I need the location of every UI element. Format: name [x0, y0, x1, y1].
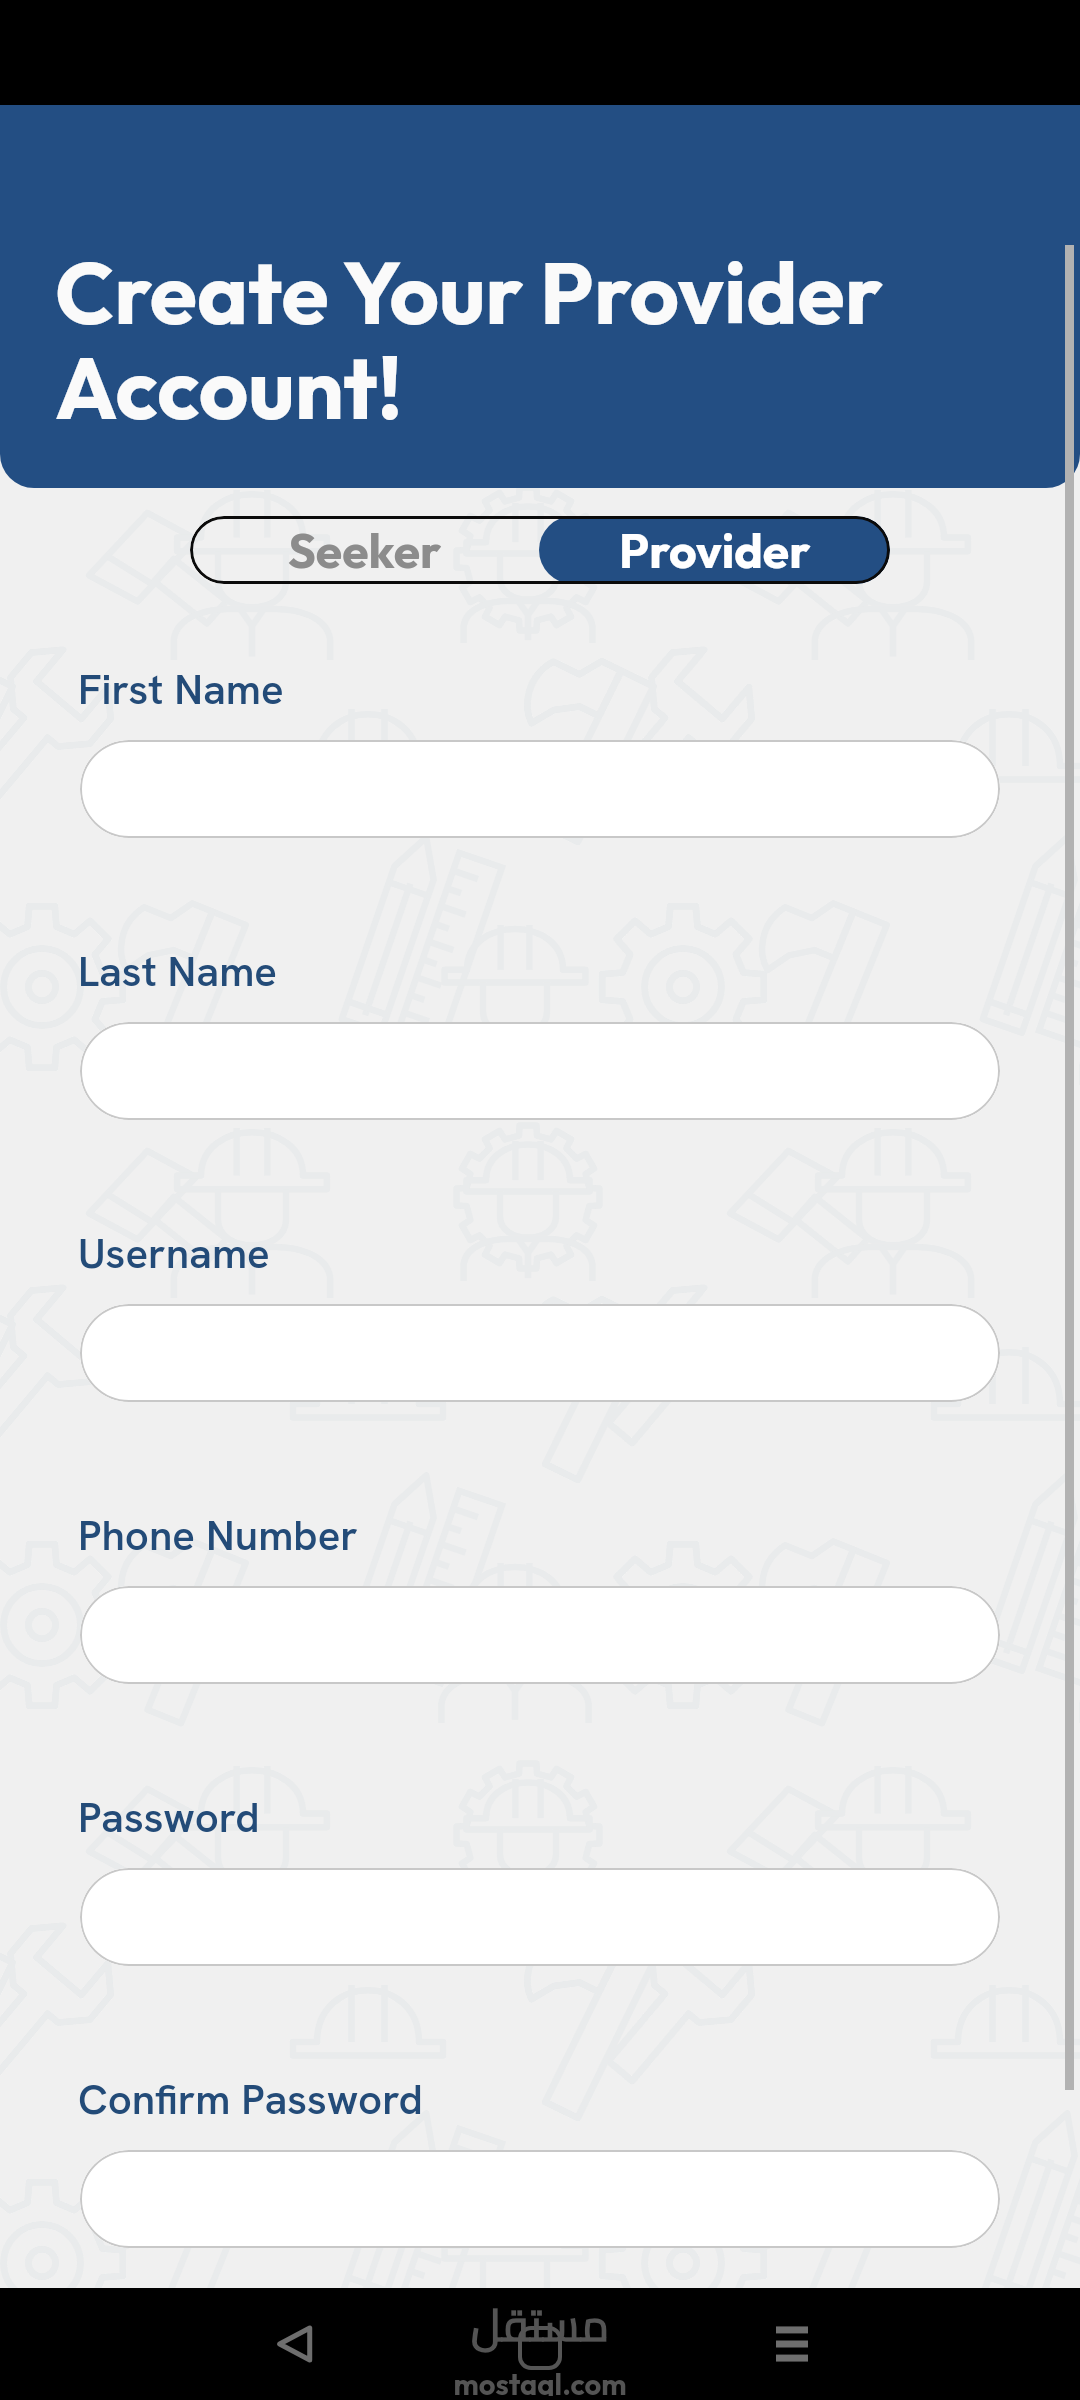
staticText: Provider	[619, 520, 811, 580]
button[interactable]: Back	[235, 2288, 355, 2400]
staticText: Last Name	[78, 944, 278, 999]
button[interactable]	[80, 1868, 1000, 1966]
button[interactable]: Seeker	[190, 516, 539, 584]
button[interactable]	[80, 740, 1000, 838]
button[interactable]: Home	[420, 2288, 660, 2400]
staticText: mostaql.com	[453, 2366, 627, 2396]
staticText: Confirm Password	[78, 2072, 423, 2127]
button[interactable]	[80, 1586, 1000, 1684]
button[interactable]	[80, 1022, 1000, 1120]
staticText: Phone Number	[78, 1508, 358, 1563]
button[interactable]	[80, 1304, 1000, 1402]
button[interactable]: Provider	[539, 516, 890, 584]
staticText: Password	[78, 1790, 260, 1845]
button[interactable]: Recent apps	[732, 2288, 852, 2400]
button[interactable]	[80, 2150, 1000, 2248]
staticText: Create Your Provider Account!	[55, 238, 883, 442]
staticText: Username	[78, 1226, 270, 1281]
staticText: مستقل	[471, 2284, 609, 2366]
staticText: Seeker	[288, 520, 442, 580]
staticText: First Name	[78, 662, 284, 717]
